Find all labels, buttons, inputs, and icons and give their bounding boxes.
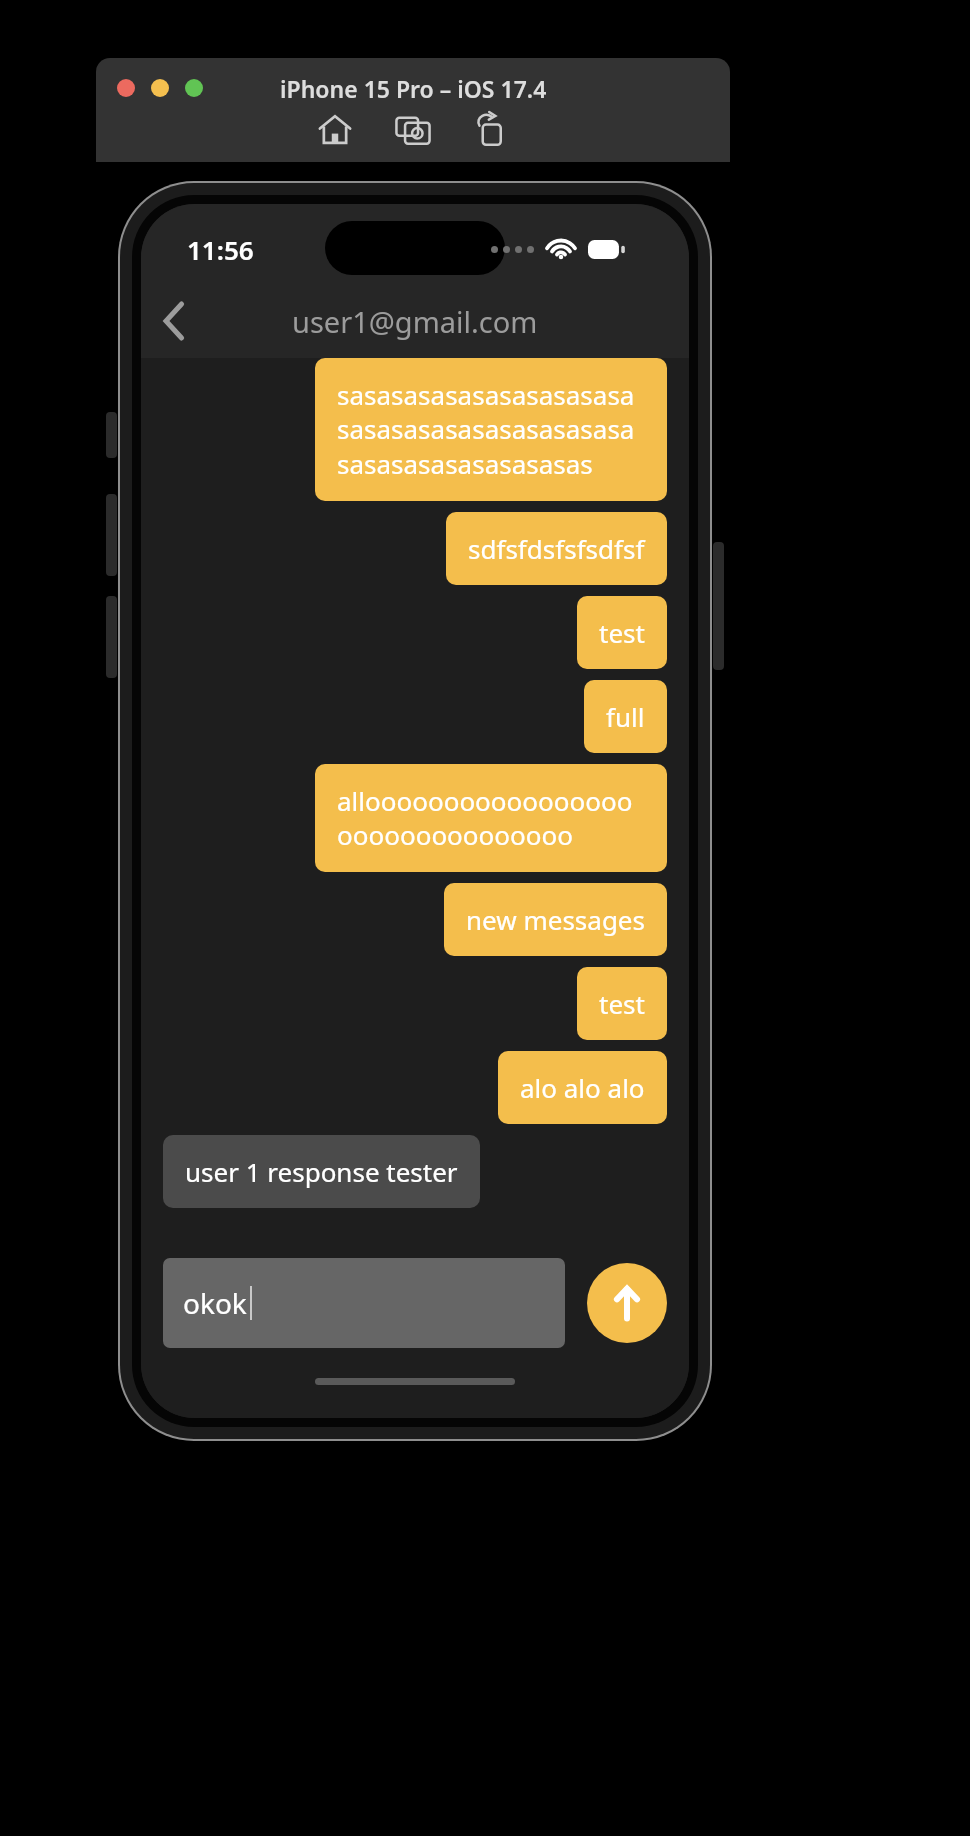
button[interactable]: full [584,680,667,753]
staticText: full [606,699,645,734]
staticText: test [599,986,645,1021]
button[interactable]: alloooooooooooooooooooooooooooooooo [315,764,667,872]
staticText: new messages [466,902,645,937]
staticText: sdfsfdsfsfsdfsf [468,531,645,566]
button[interactable]: okok [163,1258,565,1348]
button[interactable]: Home [317,112,353,148]
staticText: okok [183,1284,247,1322]
button[interactable]: sasasasasasasasasasasasasasasasasasasasa… [315,358,667,501]
staticText: sasasasasasasasasasasasasasasasasasasasa… [337,377,645,482]
button[interactable]: Close [117,79,135,97]
staticText: test [599,615,645,650]
staticText: alo alo alo [520,1070,645,1105]
button[interactable]: Rotate [473,112,509,148]
staticText: iPhone 15 Pro – iOS 17.4 [280,73,547,104]
button[interactable]: test [577,967,667,1040]
button[interactable]: alo alo alo [498,1051,667,1124]
staticText: user 1 response tester [185,1154,458,1189]
button[interactable]: user 1 response tester [163,1135,480,1208]
staticText: alloooooooooooooooooooooooooooooooo [337,783,645,853]
staticText: user1@gmail.com [292,302,538,341]
staticText: 11:56 [187,232,254,267]
button[interactable]: Send [587,1263,667,1343]
button[interactable]: test [577,596,667,669]
button[interactable]: sdfsfdsfsfsdfsf [446,512,667,585]
button[interactable]: Screenshot [395,112,431,148]
button[interactable]: Back [141,284,207,358]
button[interactable]: Minimize [151,79,169,97]
button[interactable]: Maximize [185,79,203,97]
button[interactable]: new messages [444,883,667,956]
